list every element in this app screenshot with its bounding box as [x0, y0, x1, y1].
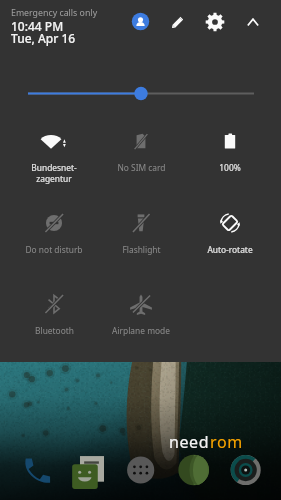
button[interactable]: Settings — [204, 11, 226, 33]
button[interactable]: User account — [131, 12, 150, 31]
staticText: rom — [210, 431, 243, 453]
staticText: 100% — [219, 162, 241, 173]
staticText: Bundesnet- zagentur — [31, 162, 77, 184]
staticText: Bluetooth — [35, 325, 74, 336]
button[interactable]: Airplane mode — [97, 291, 185, 369]
staticText: No SIM card — [117, 162, 166, 173]
button[interactable]: Flashlight — [97, 210, 185, 288]
staticText: Tue, Apr 16 — [11, 30, 76, 46]
button[interactable]: No SIM card — [97, 128, 185, 206]
staticText: Auto-rotate — [207, 244, 253, 255]
staticText: Airplane mode — [112, 325, 170, 336]
button[interactable]: Messaging — [72, 454, 104, 486]
button[interactable]: Bundesnet- zagentur — [10, 128, 98, 206]
button[interactable]: Edit tiles — [168, 12, 188, 32]
button[interactable]: Bluetooth — [10, 291, 98, 369]
button[interactable]: Phone — [20, 454, 52, 486]
button[interactable]: 100% — [186, 128, 274, 206]
staticText: Flashlight — [122, 244, 161, 255]
button[interactable]: All apps — [125, 454, 157, 486]
button[interactable]: Do not disturb — [10, 210, 98, 288]
staticText: Emergency calls only — [11, 7, 98, 19]
staticText: 10:44 PM — [11, 18, 64, 34]
button[interactable]: Collapse panel — [242, 11, 264, 33]
button[interactable]: Camera — [230, 454, 262, 486]
staticText: need — [169, 431, 210, 453]
button[interactable]: Auto-rotate — [186, 210, 274, 288]
staticText: Do not disturb — [25, 244, 83, 255]
button[interactable]: Brightness — [18, 81, 263, 106]
button[interactable]: Browser — [178, 454, 210, 486]
